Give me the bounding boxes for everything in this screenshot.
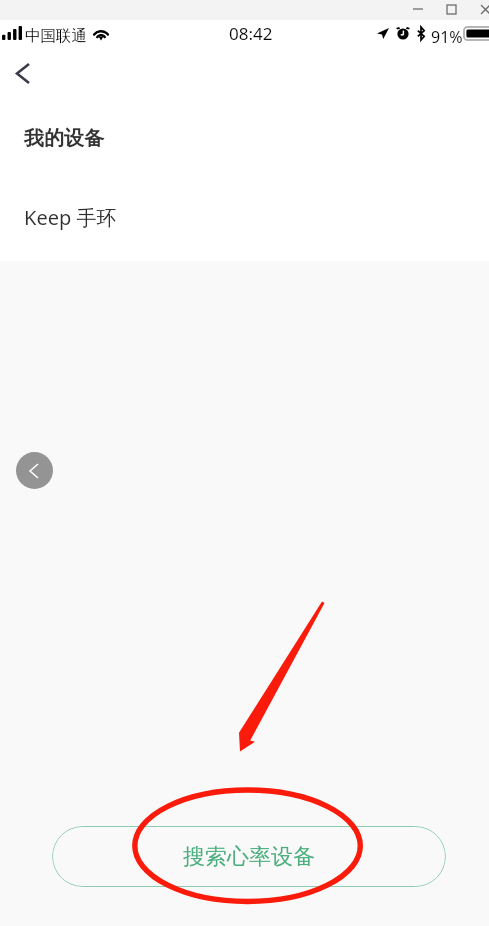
button[interactable]: 搜索心率设备: [52, 826, 446, 887]
staticText: 08:42: [229, 22, 273, 45]
button[interactable]: Close: [467, 0, 489, 20]
button[interactable]: Keep 手环: [0, 187, 489, 247]
button[interactable]: Back: [0, 50, 46, 96]
staticText: Keep 手环: [24, 204, 117, 231]
staticText: 我的设备: [24, 126, 104, 151]
staticText: 91%: [431, 26, 463, 48]
staticText: 搜索心率设备: [183, 843, 315, 871]
button[interactable]: Maximize: [433, 0, 467, 20]
button[interactable]: Back: [16, 452, 53, 489]
staticText: 中国联通: [25, 26, 87, 46]
button[interactable]: Minimize: [400, 0, 434, 20]
